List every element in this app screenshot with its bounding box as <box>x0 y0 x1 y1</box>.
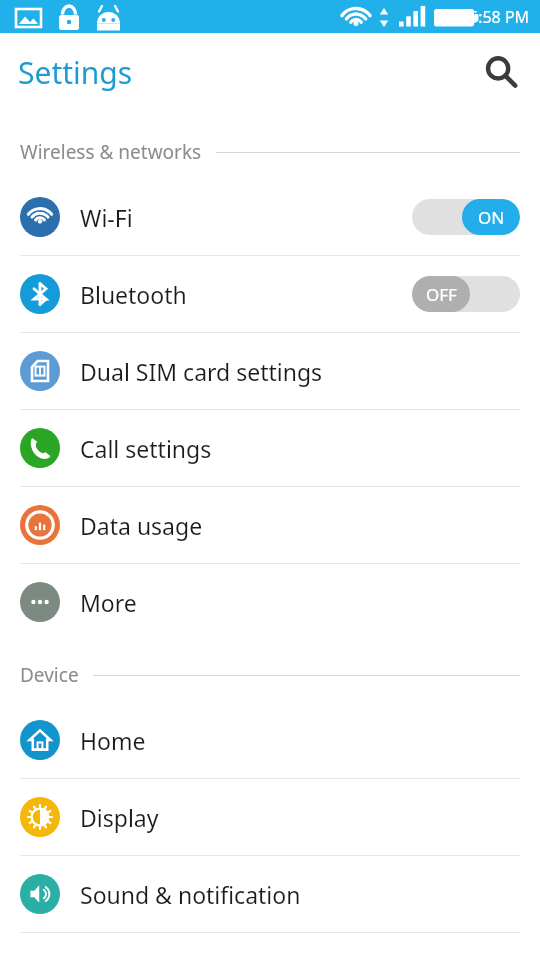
button[interactable]: Home <box>0 702 540 778</box>
staticText: Call settings <box>80 433 212 464</box>
staticText: Dual SIM card settings <box>80 356 323 387</box>
staticText: ON <box>478 206 505 229</box>
staticText: More <box>80 587 137 618</box>
button[interactable]: Data usage <box>0 487 540 563</box>
staticText: Sound & notification <box>80 879 301 910</box>
staticText: Wireless & networks <box>20 139 202 165</box>
button[interactable]: Search <box>474 45 528 99</box>
button[interactable]: Sound & notification <box>0 856 540 932</box>
button[interactable]: Wi-Fi <box>0 179 540 255</box>
staticText: OFF <box>426 283 457 306</box>
button[interactable]: Call settings <box>0 410 540 486</box>
button[interactable]: More <box>0 564 540 640</box>
button[interactable]: Display <box>0 779 540 855</box>
button[interactable]: Dual SIM card settings <box>0 333 540 409</box>
staticText: Home <box>80 725 146 756</box>
button[interactable]: OFF <box>412 276 520 312</box>
staticText: Data usage <box>80 510 203 541</box>
staticText: Device <box>20 662 79 688</box>
staticText: Display <box>80 802 159 833</box>
staticText: 5:58 PM <box>469 6 530 28</box>
button[interactable]: ON <box>412 199 520 235</box>
button[interactable]: Bluetooth <box>0 256 540 332</box>
staticText: Settings <box>18 52 133 93</box>
staticText: Wi-Fi <box>80 202 133 233</box>
staticText: Bluetooth <box>80 279 187 310</box>
